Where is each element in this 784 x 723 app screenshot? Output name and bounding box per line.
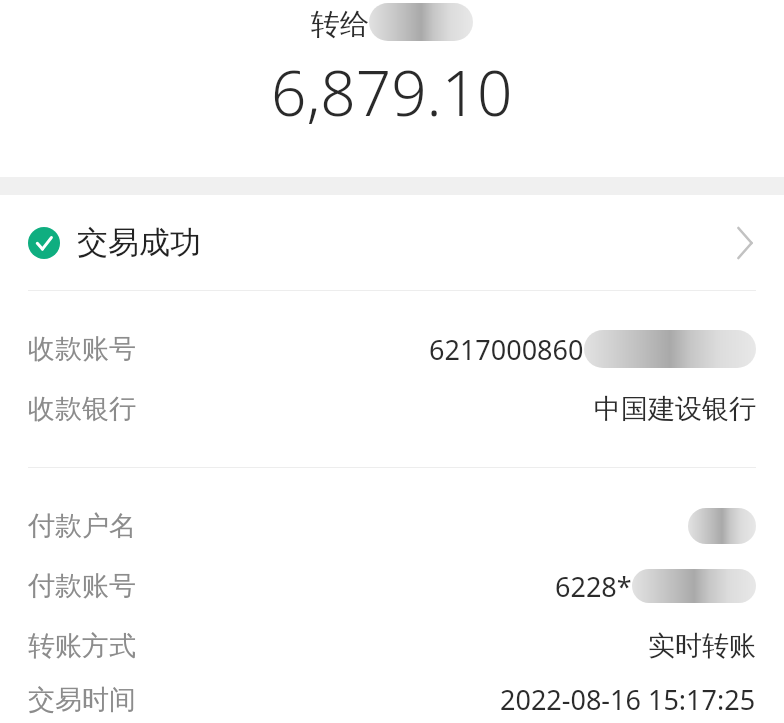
staticText: 收款银行 bbox=[28, 392, 136, 426]
button[interactable]: 转账方式 bbox=[0, 616, 784, 676]
staticText: 收款账号 bbox=[28, 332, 136, 366]
staticText: 转账方式 bbox=[28, 629, 136, 663]
staticText: 交易时间 bbox=[28, 683, 136, 717]
staticText: 交易成功 bbox=[77, 223, 201, 262]
staticText: 6228* bbox=[555, 568, 632, 605]
staticText: 中国建设银行 bbox=[594, 392, 756, 426]
button[interactable]: 收款银行 bbox=[0, 379, 784, 439]
staticText: 转给 bbox=[311, 6, 369, 43]
button[interactable]: 交易成功 bbox=[0, 195, 784, 290]
staticText: 付款户名 bbox=[28, 509, 136, 543]
staticText: 2022-08-16 15:17:25 bbox=[500, 681, 756, 718]
staticText: 6217000860 bbox=[429, 331, 584, 368]
staticText: 6,879.10 bbox=[271, 50, 513, 134]
button[interactable]: 收款账号 bbox=[0, 319, 784, 379]
button[interactable]: 付款户名 bbox=[0, 496, 784, 556]
staticText: 实时转账 bbox=[648, 629, 756, 663]
other: 查看详情 bbox=[736, 228, 756, 258]
staticText: 付款账号 bbox=[28, 569, 136, 603]
button[interactable]: 交易时间 bbox=[0, 676, 784, 723]
button[interactable]: 付款账号 bbox=[0, 556, 784, 616]
